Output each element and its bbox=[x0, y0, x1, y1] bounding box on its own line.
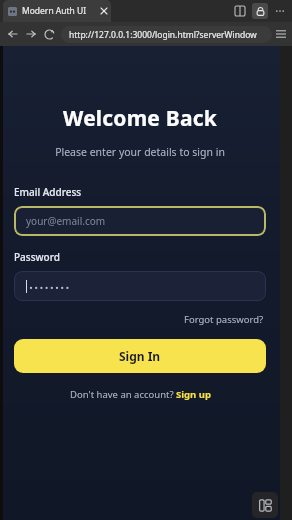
button[interactable]: Back bbox=[4, 25, 22, 43]
staticText: Sign In bbox=[119, 348, 161, 364]
button[interactable]: your@email.com bbox=[14, 206, 266, 236]
staticText: http://127.0.0.1:3000/login.html?serverW… bbox=[69, 29, 257, 41]
button[interactable]: Dashboard bbox=[252, 492, 278, 518]
staticText: Email Address bbox=[14, 185, 82, 199]
staticText: Welcome Back bbox=[14, 104, 266, 133]
button[interactable]: Close tab bbox=[97, 0, 111, 22]
button[interactable]: Sign In bbox=[14, 339, 266, 373]
button[interactable]: Forgot password? bbox=[182, 311, 266, 328]
button[interactable]: Forward bbox=[22, 25, 40, 43]
button[interactable] bbox=[14, 271, 266, 301]
button[interactable]: Menu bbox=[272, 25, 290, 43]
button[interactable]: Modern Auth UI bbox=[3, 0, 111, 22]
staticText: Don't have an account? Sign up bbox=[70, 388, 211, 401]
staticText: your@email.com bbox=[26, 214, 106, 228]
button[interactable]: Don't have an account? Sign up bbox=[66, 386, 215, 403]
staticText: Modern Auth UI bbox=[22, 5, 87, 17]
button[interactable]: Refresh bbox=[40, 25, 58, 43]
staticText: Password bbox=[14, 250, 60, 264]
button[interactable]: Settings and more bbox=[272, 3, 288, 19]
button[interactable]: http://127.0.0.1:3000/login.html?serverW… bbox=[61, 26, 272, 43]
staticText: Forgot password? bbox=[184, 313, 264, 326]
button[interactable]: Split screen bbox=[232, 3, 248, 19]
staticText: Please enter your details to sign in bbox=[14, 145, 266, 159]
button[interactable]: Browser essentials bbox=[252, 3, 268, 19]
